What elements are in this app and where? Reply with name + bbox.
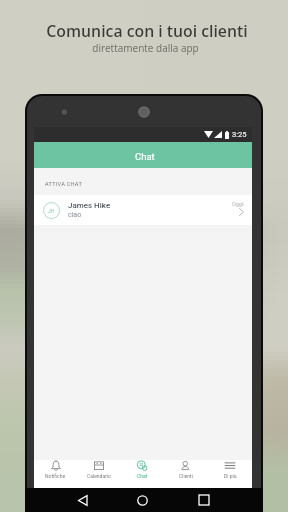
staticText: Di più: [224, 473, 237, 479]
staticText: 3:25: [232, 130, 247, 139]
staticText: James Hike: [68, 201, 111, 210]
button[interactable]: Chat: [120, 460, 164, 479]
button[interactable]: Recents: [195, 491, 213, 509]
button[interactable]: Calendario: [77, 460, 120, 479]
staticText: Comunica con i tuoi clienti: [46, 20, 248, 42]
staticText: ATTIVA CHAT: [45, 181, 82, 188]
button[interactable]: Home: [133, 491, 151, 509]
staticText: direttamente dalla app: [92, 41, 199, 55]
staticText: Calendario: [87, 473, 111, 479]
staticText: Clienti: [179, 473, 193, 479]
staticText: Chat: [135, 151, 155, 162]
staticText: ciao: [68, 211, 82, 219]
staticText: Oggi: [232, 201, 244, 208]
staticText: Chat: [137, 473, 148, 479]
button[interactable]: Notifiche: [34, 460, 77, 479]
button[interactable]: Back: [73, 491, 91, 509]
staticText: Notifiche: [45, 473, 66, 479]
staticText: JH: [48, 208, 55, 214]
button[interactable]: Clienti: [164, 460, 208, 479]
button[interactable]: Di più: [208, 460, 252, 479]
button[interactable]: JH: [34, 195, 252, 225]
